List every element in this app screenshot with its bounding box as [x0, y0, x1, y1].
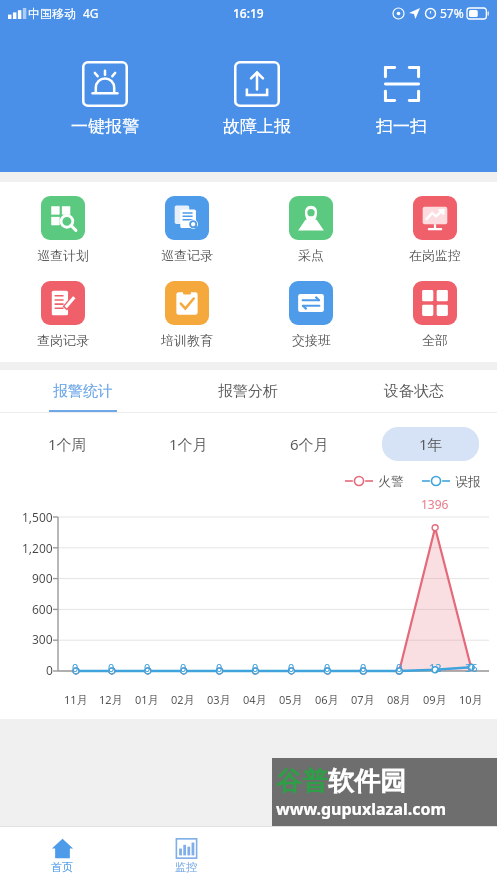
staticText: 01月 — [135, 692, 159, 707]
staticText: 首页 — [51, 860, 73, 874]
staticText: 57% — [440, 5, 464, 21]
staticText: 09月 — [423, 692, 447, 707]
staticText: 11月 — [64, 692, 88, 707]
staticText: 软件园 — [328, 765, 406, 798]
staticText: 1,200 — [22, 540, 53, 556]
button[interactable]: 报警分析 — [165, 370, 331, 412]
staticText: 12 — [429, 660, 442, 675]
staticText: www.gupuxlazal.com — [276, 798, 447, 820]
button[interactable]: 1个周 — [18, 427, 116, 461]
staticText: 0 — [252, 660, 259, 675]
staticText: 采点 — [298, 247, 324, 263]
staticText: 火警 — [378, 473, 404, 489]
button[interactable]: 首页 — [0, 827, 124, 883]
staticText: 300 — [32, 631, 53, 647]
staticText: 4G — [83, 5, 99, 21]
button[interactable]: 在岗监控 — [373, 194, 497, 265]
staticText: 16:19 — [233, 5, 264, 21]
staticText: 0 — [288, 660, 295, 675]
button[interactable]: 报警统计 — [0, 370, 165, 412]
staticText: 0 — [216, 660, 223, 675]
staticText: 培训教育 — [161, 332, 213, 348]
staticText: 36 — [465, 660, 478, 675]
staticText: 1个周 — [48, 434, 87, 454]
staticText: 1个月 — [169, 434, 208, 454]
button[interactable]: 巡查计划 — [0, 194, 125, 265]
button[interactable]: 扫一扫 — [362, 55, 441, 143]
button[interactable]: 监控 — [124, 827, 248, 883]
staticText: 报警分析 — [218, 382, 278, 401]
button[interactable]: 交接班 — [249, 279, 373, 350]
staticText: 0 — [72, 660, 79, 675]
staticText: 0 — [144, 660, 151, 675]
staticText: 全部 — [422, 332, 448, 348]
staticText: 0 — [46, 662, 53, 678]
staticText: 中国移动 — [28, 6, 76, 21]
staticText: 巡查记录 — [161, 247, 213, 263]
staticText: 故障上报 — [223, 116, 291, 137]
staticText: 1396 — [421, 496, 449, 512]
staticText: 1,500 — [22, 509, 53, 525]
staticText: 设备状态 — [384, 382, 444, 401]
button[interactable]: 1个月 — [140, 427, 237, 461]
staticText: 在岗监控 — [409, 247, 461, 263]
staticText: 07月 — [351, 692, 375, 707]
staticText: 扫一扫 — [376, 116, 427, 137]
staticText: 一键报警 — [71, 116, 139, 137]
button[interactable]: 培训教育 — [125, 279, 249, 350]
staticText: 交接班 — [292, 332, 331, 348]
button[interactable]: 故障上报 — [209, 55, 305, 143]
staticText: 巡查计划 — [37, 247, 89, 263]
staticText: 报警统计 — [53, 382, 113, 401]
button[interactable]: 一键报警 — [57, 55, 153, 143]
button[interactable]: 采点 — [249, 194, 373, 265]
staticText: 0 — [360, 660, 367, 675]
staticText: 03月 — [207, 692, 231, 707]
staticText: 05月 — [279, 692, 303, 707]
staticText: 0 — [180, 660, 187, 675]
button[interactable]: 巡查记录 — [125, 194, 249, 265]
staticText: 02月 — [171, 692, 195, 707]
staticText: 查岗记录 — [37, 332, 89, 348]
staticText: 04月 — [243, 692, 267, 707]
staticText: 12月 — [99, 692, 123, 707]
staticText: 0 — [324, 660, 331, 675]
staticText: 1年 — [419, 434, 443, 454]
staticText: 6个月 — [290, 434, 329, 454]
staticText: 监控 — [175, 860, 197, 874]
staticText: 900 — [32, 570, 53, 586]
button[interactable]: 设备状态 — [331, 370, 497, 412]
staticText: 06月 — [315, 692, 339, 707]
button[interactable]: 全部 — [373, 279, 497, 350]
button[interactable]: 6个月 — [261, 427, 358, 461]
button[interactable]: 1年 — [382, 427, 479, 461]
staticText: 08月 — [387, 692, 411, 707]
staticText: 600 — [32, 601, 53, 617]
staticText: 谷普 — [276, 765, 328, 798]
staticText: 0 — [108, 660, 115, 675]
staticText: 0 — [396, 660, 403, 675]
staticText: 10月 — [459, 692, 483, 707]
button[interactable]: 查岗记录 — [0, 279, 125, 350]
staticText: 误报 — [455, 473, 481, 489]
